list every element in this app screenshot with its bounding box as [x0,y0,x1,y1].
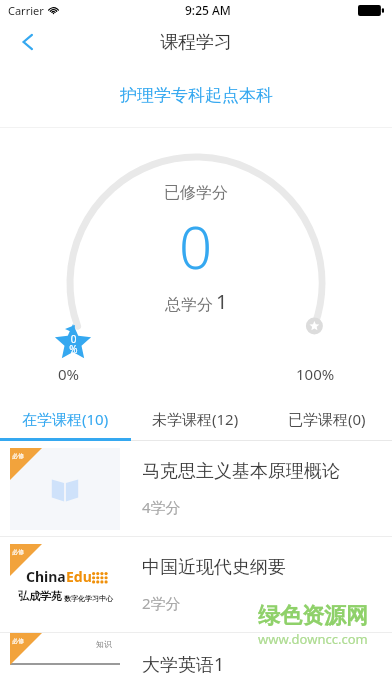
staticText: 0% [58,364,80,384]
staticText: 0 [179,207,213,286]
button[interactable]: 未学课程(12) [130,400,261,438]
staticText: 未学课程(12) [152,409,239,429]
staticText: 100% [296,364,335,384]
staticText: Edu [66,567,92,586]
staticText: 必修 [12,637,24,645]
staticText: 大学英语1 [142,652,225,677]
staticText: 在学课程(10) [22,409,109,429]
staticText: 必修 [12,548,24,556]
staticText: www.downcc.com [258,630,368,648]
staticText: 知识 [96,639,112,649]
button[interactable]: 在学课程(10) [0,400,130,438]
button[interactable]: China [0,537,392,632]
button[interactable]: 必修 [0,441,392,536]
staticText: 必修 [12,452,24,460]
staticText: Carrier [8,3,44,18]
staticText: 已学课程(0) [288,409,366,429]
staticText: 总学分 [165,295,213,315]
staticText: 马克思主义基本原理概论 [142,460,340,483]
staticText: 2学分 [142,593,181,613]
staticText: 0 % [69,332,78,356]
staticText: 数字化学习中心 [64,594,113,603]
button[interactable]: 护理学专科起点本科 [0,64,392,127]
staticText: China [26,567,66,586]
staticText: 中国近现代史纲要 [142,556,286,579]
staticText: 护理学专科起点本科 [120,85,273,106]
button[interactable]: Back [6,20,50,64]
staticText: 课程学习 [160,31,232,54]
button[interactable]: 已学课程(0) [261,400,392,438]
button[interactable]: 知识 [0,633,392,696]
staticText: 绿色资源网 [258,602,368,630]
staticText: 9:25 AM [185,2,231,18]
staticText: 弘成学苑 [18,589,62,603]
staticText: 4学分 [142,497,181,517]
staticText: 1 [216,288,228,315]
staticText: 已修学分 [164,183,228,203]
